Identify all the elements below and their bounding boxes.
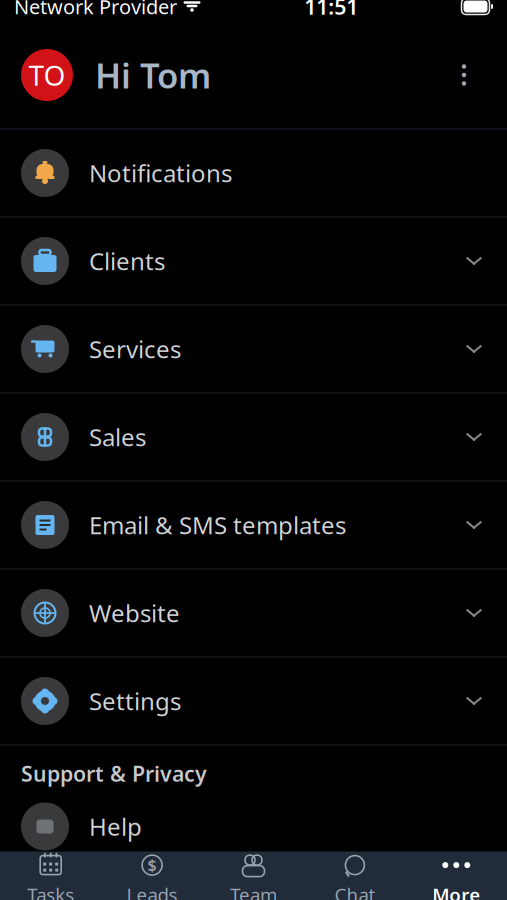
staticText: 11:51: [304, 0, 358, 21]
staticText: Clients: [89, 245, 165, 277]
button[interactable]: More options: [442, 53, 486, 97]
button[interactable]: Chat: [304, 851, 406, 900]
button[interactable]: Services: [0, 305, 507, 392]
button[interactable]: Team: [203, 851, 304, 900]
button[interactable]: Website: [0, 569, 507, 656]
button[interactable]: Sales: [0, 393, 507, 480]
staticText: More: [432, 882, 480, 900]
staticText: Hi Tom: [95, 52, 211, 98]
button[interactable]: $: [101, 851, 203, 900]
staticText: Notifications: [89, 157, 232, 189]
staticText: Support & Privacy: [21, 759, 207, 788]
button[interactable]: More: [406, 851, 507, 900]
button[interactable]: Settings: [0, 657, 507, 744]
staticText: Settings: [89, 685, 181, 717]
staticText: Help: [89, 811, 142, 842]
staticText: Sales: [89, 421, 146, 453]
button[interactable]: Help: [0, 801, 507, 851]
button[interactable]: Email & SMS templates: [0, 481, 507, 568]
staticText: Network Provider: [14, 0, 177, 20]
button[interactable]: Tasks: [0, 851, 101, 900]
button[interactable]: Profile: [21, 49, 73, 101]
staticText: Services: [89, 333, 181, 365]
button[interactable]: Clients: [0, 217, 507, 304]
staticText: Chat: [334, 882, 375, 900]
staticText: $: [148, 854, 157, 876]
staticText: Tasks: [27, 882, 74, 900]
staticText: Leads: [127, 882, 178, 900]
staticText: Email & SMS templates: [89, 509, 346, 541]
staticText: TO: [28, 56, 65, 94]
button[interactable]: Notifications: [0, 129, 507, 216]
staticText: Website: [89, 597, 180, 629]
staticText: Team: [230, 882, 277, 900]
